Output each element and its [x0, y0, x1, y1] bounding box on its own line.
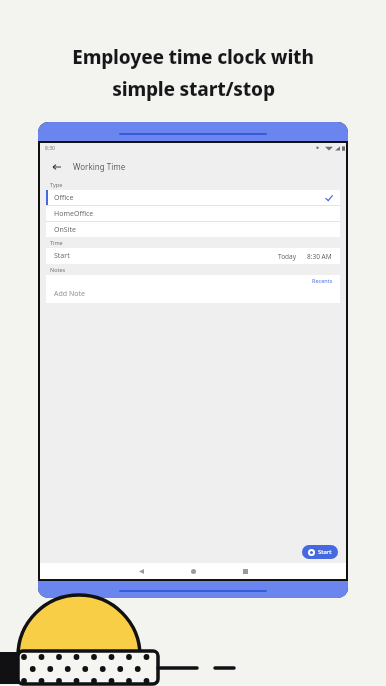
button[interactable]: OnSite — [46, 222, 340, 237]
button[interactable]: Recents — [237, 563, 253, 579]
staticText: HomeOffice — [54, 209, 94, 219]
button[interactable]: Start — [46, 248, 340, 264]
staticText: Working Time — [73, 161, 126, 172]
staticText: Time — [50, 239, 63, 246]
button[interactable]: Recents — [312, 277, 333, 284]
button[interactable]: Start — [302, 545, 338, 559]
staticText: Start — [318, 548, 332, 556]
staticText: Type — [50, 181, 63, 188]
staticText: 8:30 AM — [307, 252, 332, 261]
staticText: simple start/stop — [112, 76, 275, 102]
staticText: Today — [278, 252, 297, 261]
staticText: 8:30 — [45, 145, 55, 152]
staticText: OnSite — [54, 225, 76, 235]
button[interactable]: HomeOffice — [46, 206, 340, 221]
staticText: Notes — [50, 266, 66, 273]
button[interactable]: Back — [133, 563, 149, 579]
staticText: Start — [54, 251, 70, 261]
staticText: Office — [54, 193, 74, 203]
button[interactable]: Back — [49, 159, 65, 175]
staticText: Employee time clock with — [72, 44, 314, 70]
button[interactable]: Home — [185, 563, 201, 579]
staticText: Add Note — [54, 289, 85, 299]
button[interactable]: Office — [46, 190, 340, 205]
